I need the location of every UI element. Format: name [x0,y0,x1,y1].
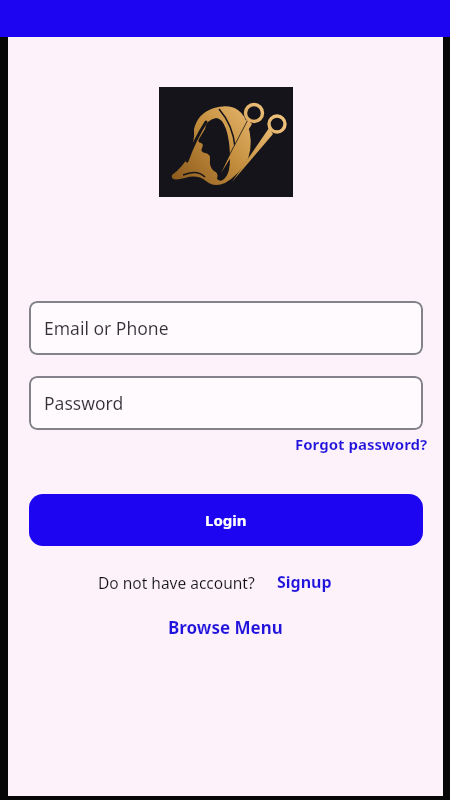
staticText: Password [44,391,124,415]
button[interactable]: Email or Phone [29,301,423,355]
staticText: Do not have account? [98,572,255,593]
staticText: Login [205,510,247,530]
staticText: Email or Phone [44,316,169,340]
button[interactable]: Forgot password? [295,434,428,454]
button[interactable]: Login [29,494,423,546]
button[interactable]: Signup [277,571,332,593]
button[interactable]: Browse Menu [168,616,283,639]
button[interactable]: Password [29,376,423,430]
